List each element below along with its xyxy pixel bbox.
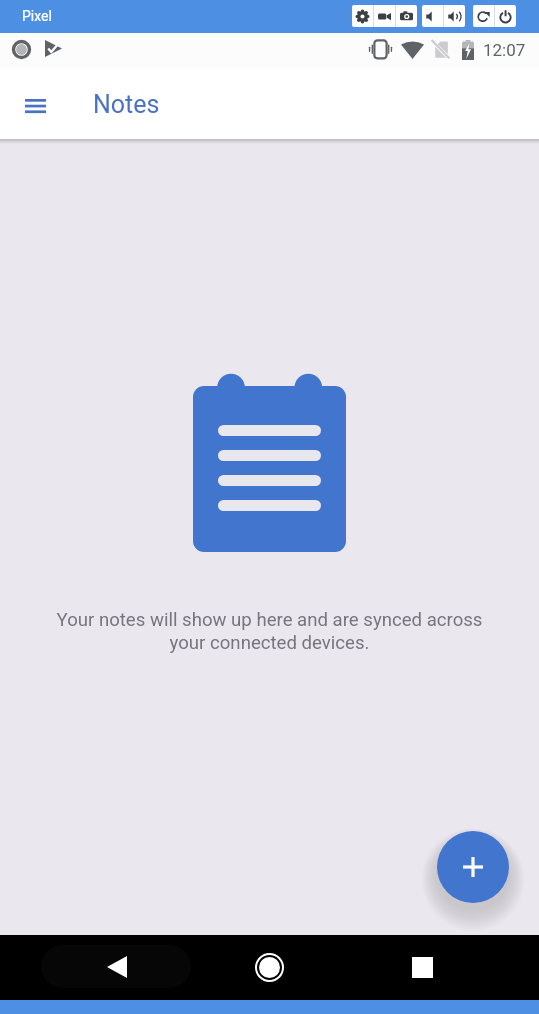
button[interactable]: power — [495, 5, 516, 27]
button[interactable]: voldown — [422, 5, 443, 27]
button[interactable]: Add note — [437, 831, 509, 903]
button[interactable]: rotate — [473, 5, 494, 27]
button[interactable]: gear — [352, 5, 373, 27]
button[interactable]: video — [374, 5, 395, 27]
staticText: Your notes will show up here and are syn… — [39, 609, 500, 654]
button[interactable]: Recent apps — [392, 937, 452, 997]
button[interactable]: Back — [87, 937, 147, 997]
staticText: Pixel — [22, 8, 52, 24]
button[interactable]: Home — [239, 937, 299, 997]
staticText: Notes — [93, 90, 160, 119]
button[interactable]: volup — [444, 5, 465, 27]
button[interactable]: camera — [396, 5, 417, 27]
button[interactable]: Open navigation menu — [13, 84, 57, 128]
staticText: 12:07 — [483, 40, 526, 60]
